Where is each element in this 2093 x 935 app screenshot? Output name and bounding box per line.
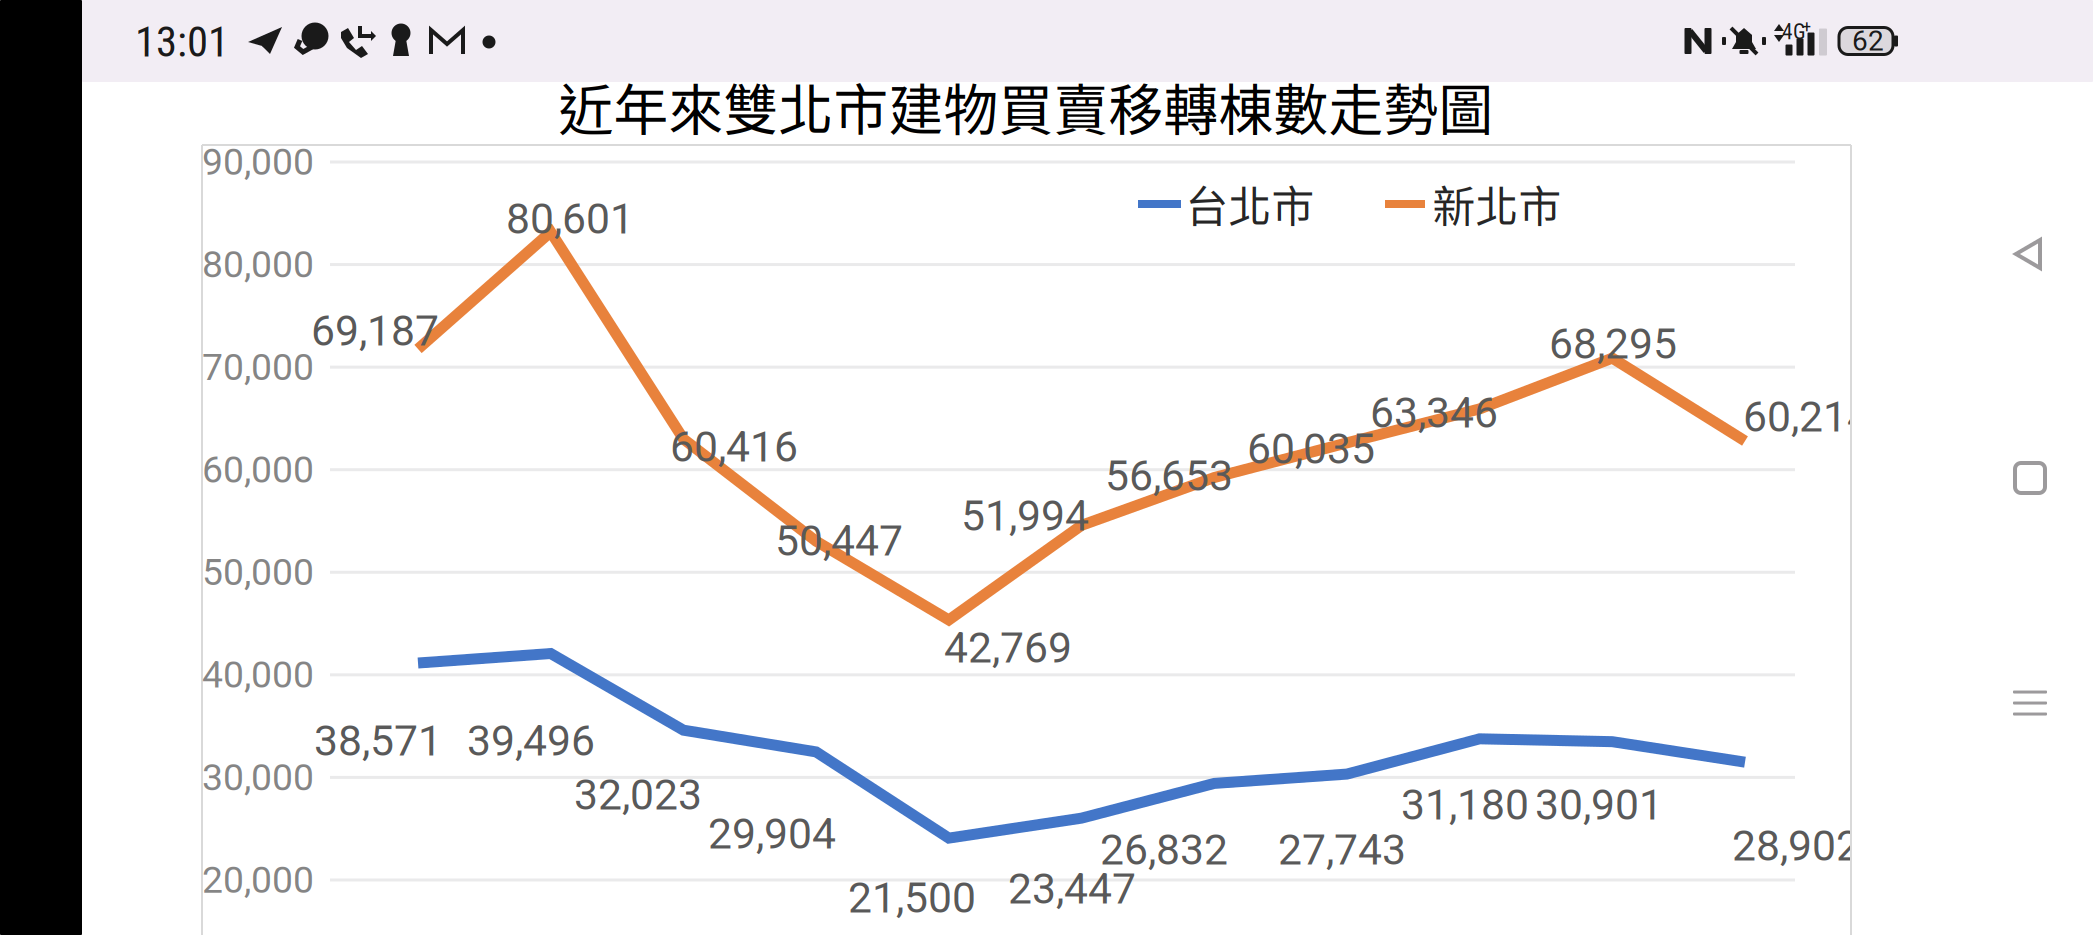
staticText: 42,769 [944,623,1072,673]
staticText: 30,901 [1535,780,1663,830]
staticText: 21,500 [848,873,976,923]
staticText: 63,346 [1370,388,1498,438]
staticText: 31,180 [1401,780,1529,830]
staticText: 60,214 [1743,392,1871,442]
staticText: 56,653 [1105,451,1233,501]
staticText: 32,023 [574,770,702,820]
staticText: 80,601 [506,194,634,244]
staticText: 68,295 [1549,319,1677,369]
staticText: 62 [1852,25,1884,57]
staticText: 38,571 [314,716,442,766]
staticText: 23,447 [1008,864,1136,914]
staticText: 40,000 [202,653,314,697]
staticText: 台北市 [1185,173,1314,235]
staticText: 39,496 [467,716,595,766]
staticText: 近年來雙北市建物買賣移轉棟數走勢圖 [558,66,1493,146]
staticText: 28,902 [1732,821,1860,871]
staticText: 29,904 [708,809,836,859]
staticText: 60,416 [670,422,798,472]
button[interactable]: Recent apps [0,0,2093,935]
staticText: 27,743 [1278,825,1406,875]
staticText: 13:01 [135,17,229,67]
staticText: 26,832 [1100,825,1228,875]
staticText: 50,447 [775,516,903,566]
staticText: 4G [1782,19,1806,44]
staticText: 51,994 [961,491,1089,541]
staticText: 30,000 [202,755,314,799]
button[interactable]: Back [0,0,2093,935]
staticText: + [1802,16,1811,36]
staticText: 20,000 [202,858,314,902]
staticText: 50,000 [202,550,314,594]
staticText: 60,035 [1247,424,1375,474]
button[interactable]: Home [0,0,2093,935]
staticText: 90,000 [202,140,314,184]
staticText: 新北市 [1432,173,1561,235]
staticText: 80,000 [202,243,314,286]
staticText: 70,000 [202,345,314,389]
staticText: 69,187 [311,306,439,356]
staticText: 60,000 [202,448,314,491]
